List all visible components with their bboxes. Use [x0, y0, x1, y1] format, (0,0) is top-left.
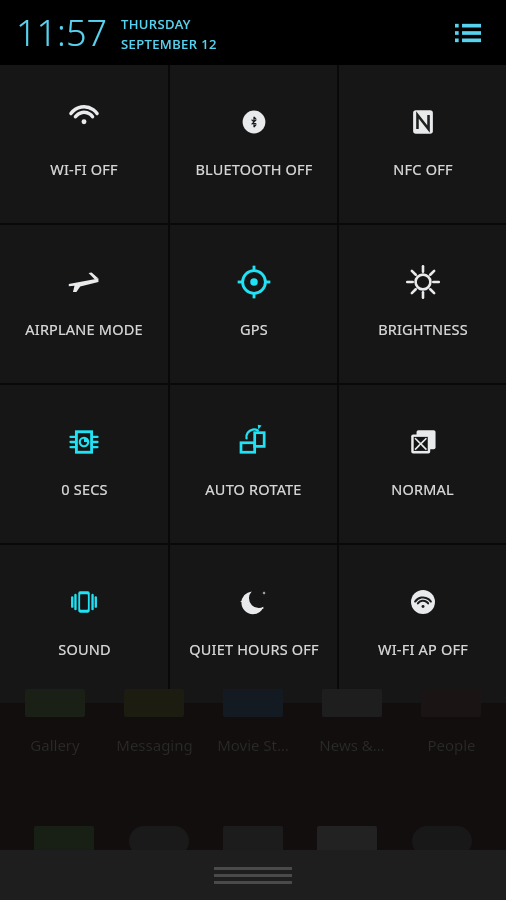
- staticText: News &…: [319, 735, 385, 755]
- button[interactable]: GPS: [170, 225, 337, 383]
- staticText: People: [427, 735, 476, 755]
- button[interactable]: Quick settings list: [448, 13, 488, 53]
- button[interactable]: Wi-Fi hotspot off: [339, 545, 506, 703]
- button[interactable]: Bluetooth off: [170, 65, 337, 223]
- staticText: WI-FI AP OFF: [378, 639, 468, 659]
- button[interactable]: Quiet hours off: [170, 545, 337, 703]
- staticText: GPS: [240, 319, 268, 339]
- staticText: SEPTEMBER 12: [121, 35, 217, 53]
- button[interactable]: Screen timeout: [0, 385, 168, 543]
- staticText: 0 SECS: [61, 479, 108, 499]
- staticText: BLUETOOTH OFF: [195, 159, 313, 179]
- staticText: Movie St…: [217, 735, 289, 755]
- staticText: WI-FI OFF: [50, 159, 118, 179]
- staticText: NORMAL: [391, 479, 454, 499]
- button[interactable]: Brightness: [339, 225, 506, 383]
- button[interactable]: Auto rotate: [170, 385, 337, 543]
- button[interactable]: Normal mode: [339, 385, 506, 543]
- staticText: BRIGHTNESS: [378, 319, 468, 339]
- staticText: AUTO ROTATE: [205, 479, 302, 499]
- button[interactable]: Airplane mode: [0, 225, 168, 383]
- staticText: 11:57: [16, 8, 108, 57]
- staticText: Gallery: [30, 735, 80, 755]
- staticText: THURSDAY: [121, 15, 191, 33]
- staticText: QUIET HOURS OFF: [189, 639, 319, 659]
- staticText: Messaging: [116, 735, 193, 755]
- staticText: NFC OFF: [393, 159, 453, 179]
- button[interactable]: NFC off: [339, 65, 506, 223]
- button[interactable]: Wi-Fi off: [0, 65, 168, 223]
- staticText: SOUND: [58, 639, 111, 659]
- staticText: AIRPLANE MODE: [25, 319, 143, 339]
- button[interactable]: Sound: [0, 545, 168, 703]
